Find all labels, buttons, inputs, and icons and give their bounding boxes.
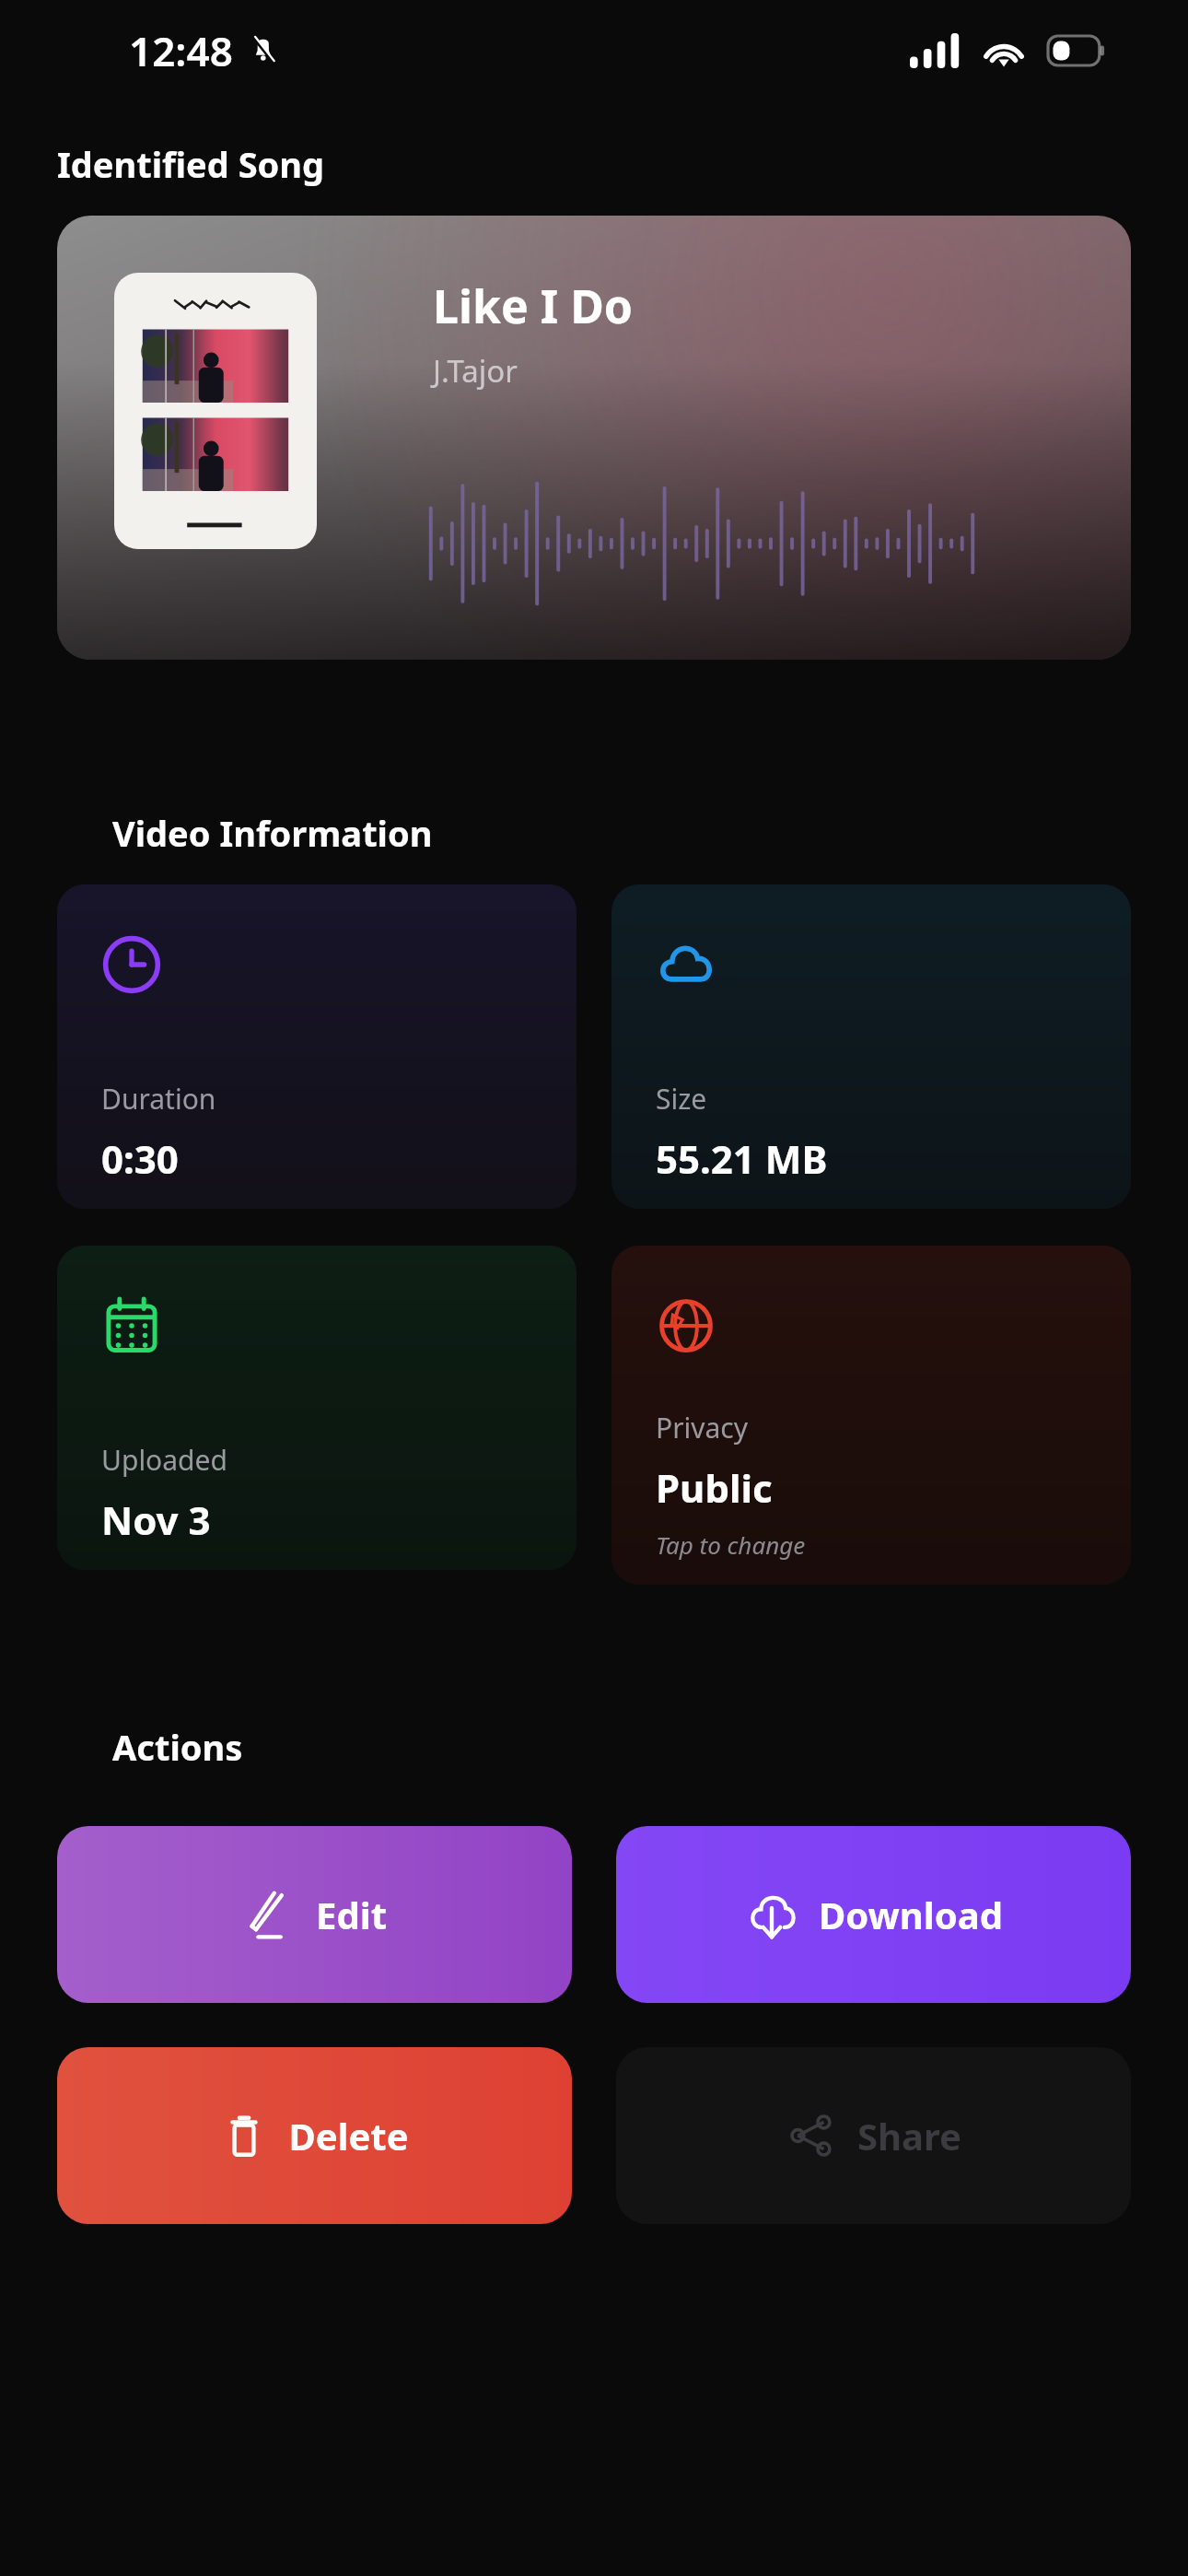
staticText: Duration bbox=[101, 1080, 216, 1118]
staticText: Actions bbox=[112, 1723, 243, 1771]
button[interactable]: Download bbox=[616, 1826, 1131, 2003]
staticText: J.Tajor bbox=[433, 350, 518, 392]
other: Duration bbox=[101, 934, 162, 995]
staticText: Delete bbox=[288, 2111, 409, 2160]
button[interactable]: Privacy bbox=[611, 1246, 1131, 1585]
staticText: Privacy bbox=[656, 1409, 749, 1446]
button[interactable]: Edit bbox=[57, 1826, 572, 2003]
staticText: Like I Do bbox=[433, 275, 634, 337]
staticText: Tap to change bbox=[656, 1528, 806, 1561]
staticText: Edit bbox=[316, 1890, 387, 1939]
button[interactable]: Duration bbox=[57, 884, 577, 1209]
staticText: Share bbox=[857, 2111, 961, 2160]
button[interactable]: Uploaded bbox=[57, 1246, 577, 1570]
button[interactable]: Share bbox=[616, 2047, 1131, 2224]
staticText: 12:48 bbox=[129, 23, 233, 78]
staticText: Uploaded bbox=[101, 1441, 227, 1479]
other: Uploaded bbox=[101, 1295, 162, 1356]
staticText: Nov 3 bbox=[101, 1493, 211, 1546]
staticText: Size bbox=[656, 1080, 707, 1118]
staticText: 0:30 bbox=[101, 1132, 179, 1185]
staticText: Identified Song bbox=[57, 140, 325, 188]
button[interactable]: Delete bbox=[57, 2047, 572, 2224]
staticText: Download bbox=[819, 1890, 1003, 1939]
button[interactable]: Like I Do bbox=[57, 216, 1131, 660]
other: Privacy bbox=[656, 1295, 716, 1356]
staticText: 55.21 MB bbox=[656, 1132, 828, 1185]
staticText: Video Information bbox=[112, 809, 433, 857]
staticText: Public bbox=[656, 1461, 773, 1514]
button[interactable]: Size bbox=[611, 884, 1131, 1209]
other: Size bbox=[656, 934, 716, 995]
